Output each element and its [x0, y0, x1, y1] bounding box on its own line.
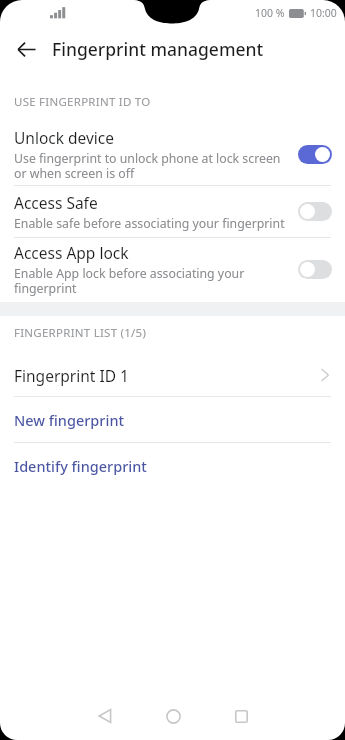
staticText: 10:00: [310, 6, 337, 20]
staticText: Identify fingerprint: [14, 456, 147, 476]
button[interactable]: Recent apps: [213, 692, 269, 740]
button[interactable]: Fingerprint ID 1: [0, 354, 345, 396]
staticText: FINGERPRINT LIST (1/5): [14, 325, 147, 341]
button[interactable]: Toggle on: [298, 145, 332, 164]
staticText: Access Safe: [14, 192, 98, 213]
button[interactable]: Toggle off: [298, 202, 332, 221]
button[interactable]: Unlock device: [0, 123, 345, 185]
button[interactable]: Access Safe: [0, 186, 345, 237]
staticText: New fingerprint: [14, 410, 125, 430]
staticText: Fingerprint management: [52, 37, 264, 61]
staticText: USE FINGERPRINT ID TO: [14, 94, 151, 110]
button[interactable]: Identify fingerprint: [0, 443, 345, 488]
staticText: Unlock device: [14, 127, 115, 148]
button[interactable]: Toggle off: [298, 260, 332, 279]
button[interactable]: Back: [77, 692, 133, 740]
button[interactable]: Home: [145, 692, 201, 740]
button[interactable]: Access App lock: [0, 238, 345, 300]
staticText: Fingerprint ID 1: [14, 365, 321, 386]
staticText: 100 %: [255, 6, 285, 20]
button[interactable]: Back: [7, 30, 45, 68]
staticText: Enable App lock before associating your …: [14, 265, 245, 296]
staticText: Use fingerprint to unlock phone at lock …: [14, 150, 281, 181]
button[interactable]: New fingerprint: [0, 397, 345, 442]
staticText: Access App lock: [14, 242, 129, 263]
staticText: Enable safe before associating your fing…: [14, 215, 285, 232]
